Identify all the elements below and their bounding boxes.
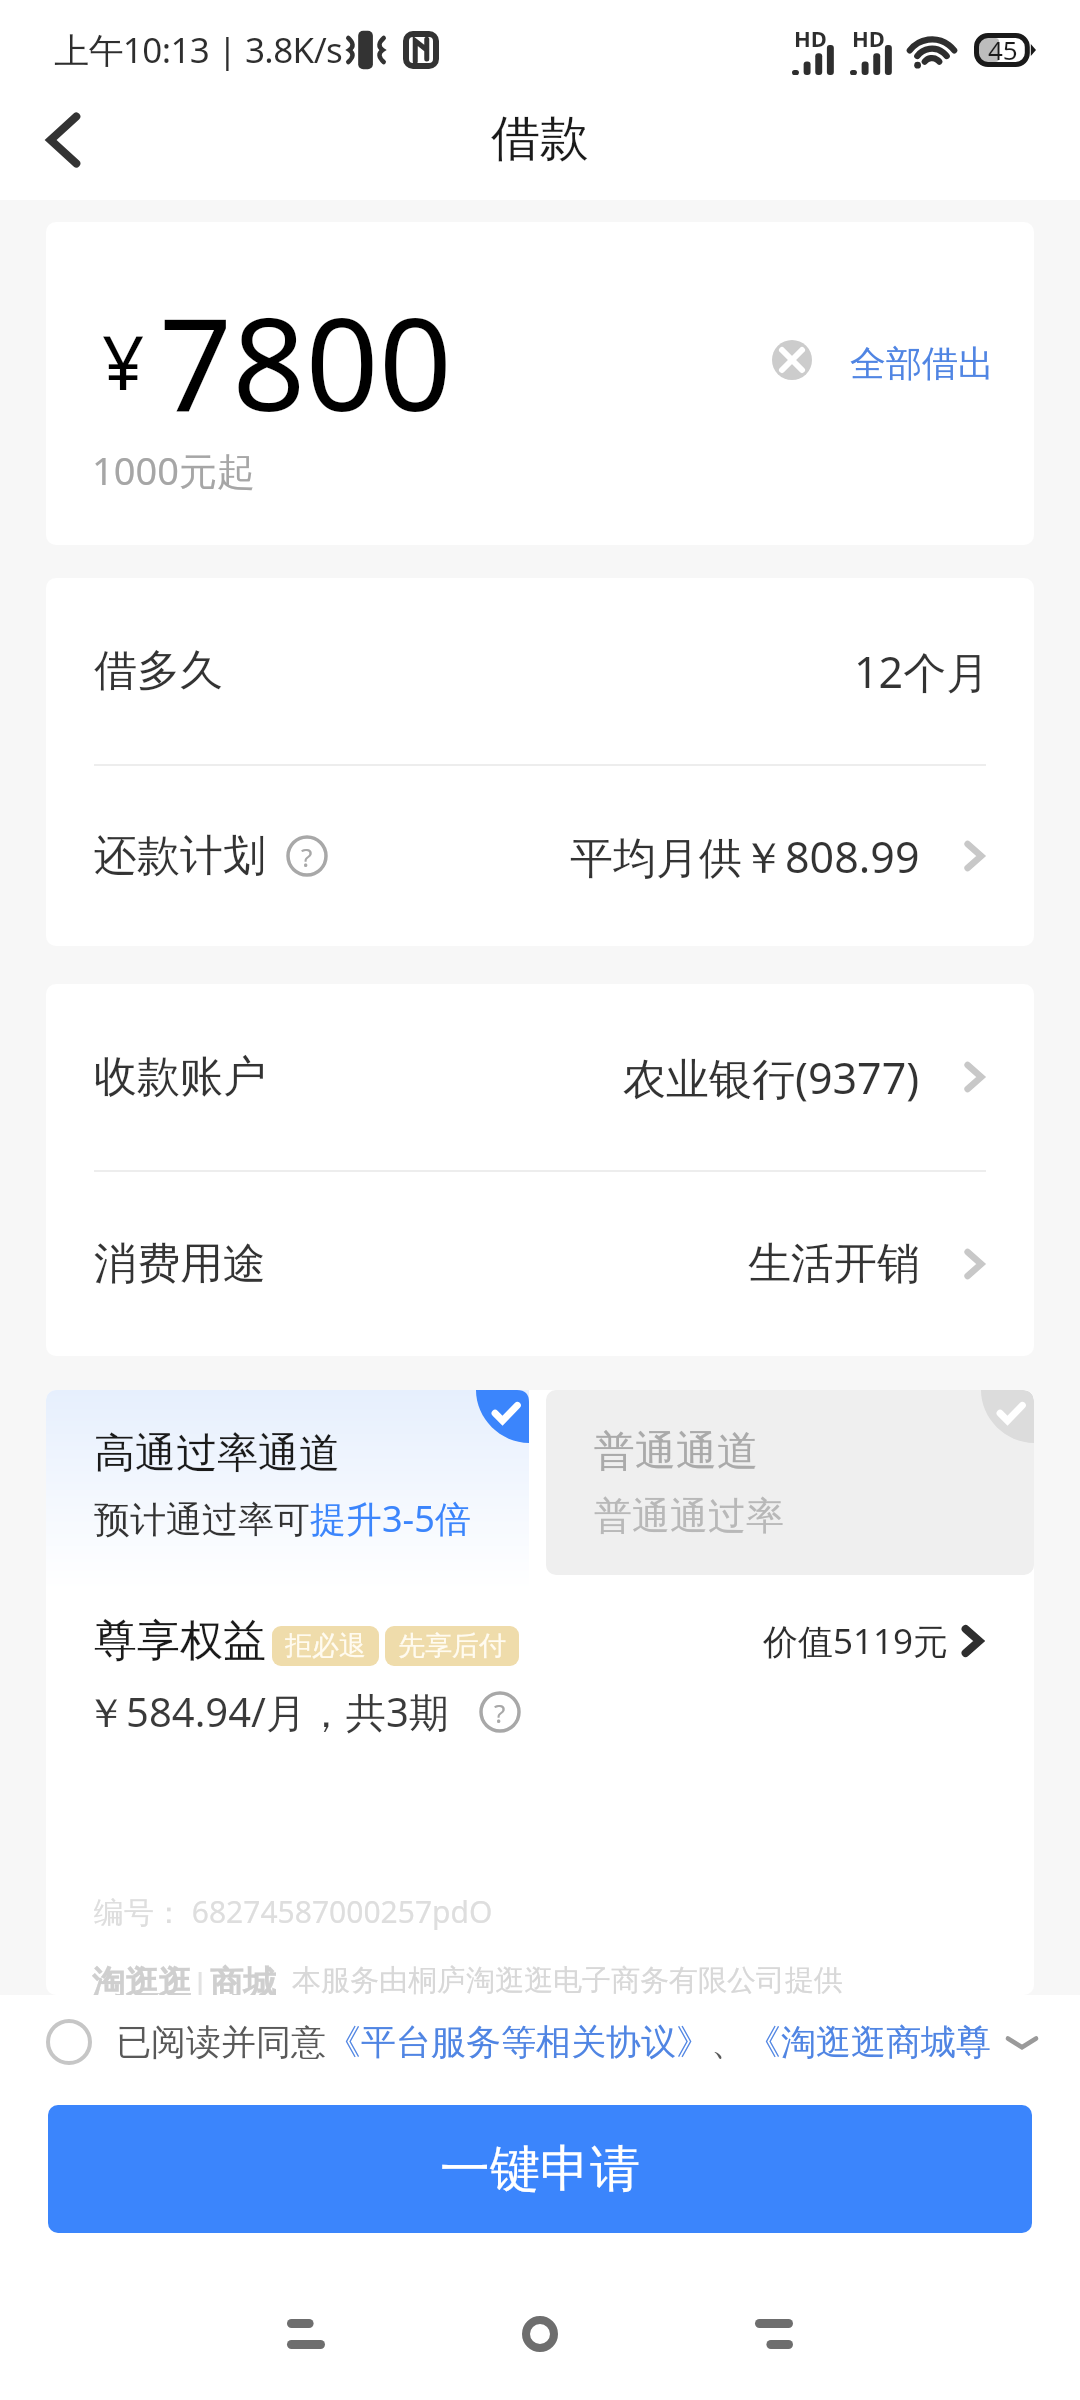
staticText: 1000元起 (92, 444, 255, 496)
staticText: 12个月 (854, 642, 990, 701)
staticText: 平均月供￥808.99 (570, 827, 920, 886)
button[interactable]: 已阅读并同意《平台服务等相关协议》、《淘逛逛商城尊 (0, 1995, 1080, 2089)
button[interactable]: Home (485, 2279, 595, 2389)
staticText: 预计通过率可提升3-5倍 (94, 1494, 471, 1543)
button[interactable]: 借多久 (46, 578, 1034, 764)
staticText: 淘逛逛 (92, 1962, 191, 1995)
staticText: 一键申请 (440, 2138, 640, 2201)
button[interactable]: 尊享权益 (46, 1590, 1034, 1739)
staticText: 先享后付 (398, 1629, 506, 1663)
staticText: 生活开销 (748, 1237, 920, 1291)
staticText: 普通通过率 (594, 1492, 784, 1540)
staticText: 尊享权益 (94, 1614, 266, 1668)
staticText: 7800 (159, 274, 452, 448)
staticText: 编号： 68274587000257pdO (94, 1891, 493, 1932)
staticText: 收款账户 (94, 1050, 266, 1104)
button[interactable]: 消费用途 (46, 1172, 1034, 1356)
button[interactable]: 一键申请 (48, 2105, 1032, 2233)
staticText: 借多久 (94, 644, 223, 698)
button[interactable]: Recents (251, 2279, 361, 2389)
staticText: 还款计划 (94, 829, 266, 883)
button[interactable]: Back (719, 2279, 829, 2389)
staticText: 拒必退 (285, 1629, 366, 1663)
button[interactable]: 普通通道 (546, 1390, 1034, 1575)
staticText: ￥584.94/月，共3期 (86, 1684, 449, 1739)
button[interactable]: 高通过率通道 (46, 1390, 529, 1590)
staticText: 农业银行(9377) (623, 1048, 920, 1107)
staticText: 普通通道 (594, 1426, 758, 1478)
staticText: 上午10:13 | 3.8K/s (54, 26, 343, 74)
staticText: 消费用途 (94, 1237, 266, 1291)
button[interactable]: 全部借出 (776, 337, 998, 390)
staticText: ? (301, 839, 313, 874)
staticText: 商城 (210, 1962, 276, 1995)
button[interactable]: 收款账户 (46, 984, 1034, 1170)
staticText: 全部借出 (850, 341, 994, 386)
staticText: 本服务由桐庐淘逛逛电子商务有限公司提供 (292, 1962, 843, 1995)
button[interactable]: 还款计划 (46, 766, 1034, 946)
staticText: 高通过率通道 (94, 1428, 340, 1480)
staticText: ? (494, 1695, 506, 1730)
staticText: HD (852, 23, 885, 53)
staticText: 45 (988, 32, 1018, 66)
staticText: 已阅读并同意《平台服务等相关协议》、《淘逛逛商城尊 (116, 2020, 991, 2064)
staticText: 价值5119元 (763, 1617, 949, 1665)
staticText: | (191, 1962, 210, 1995)
staticText: ¥ (102, 311, 145, 412)
staticText: HD (794, 23, 827, 53)
button[interactable]: Back (16, 95, 106, 185)
staticText: 借款 (491, 108, 589, 170)
